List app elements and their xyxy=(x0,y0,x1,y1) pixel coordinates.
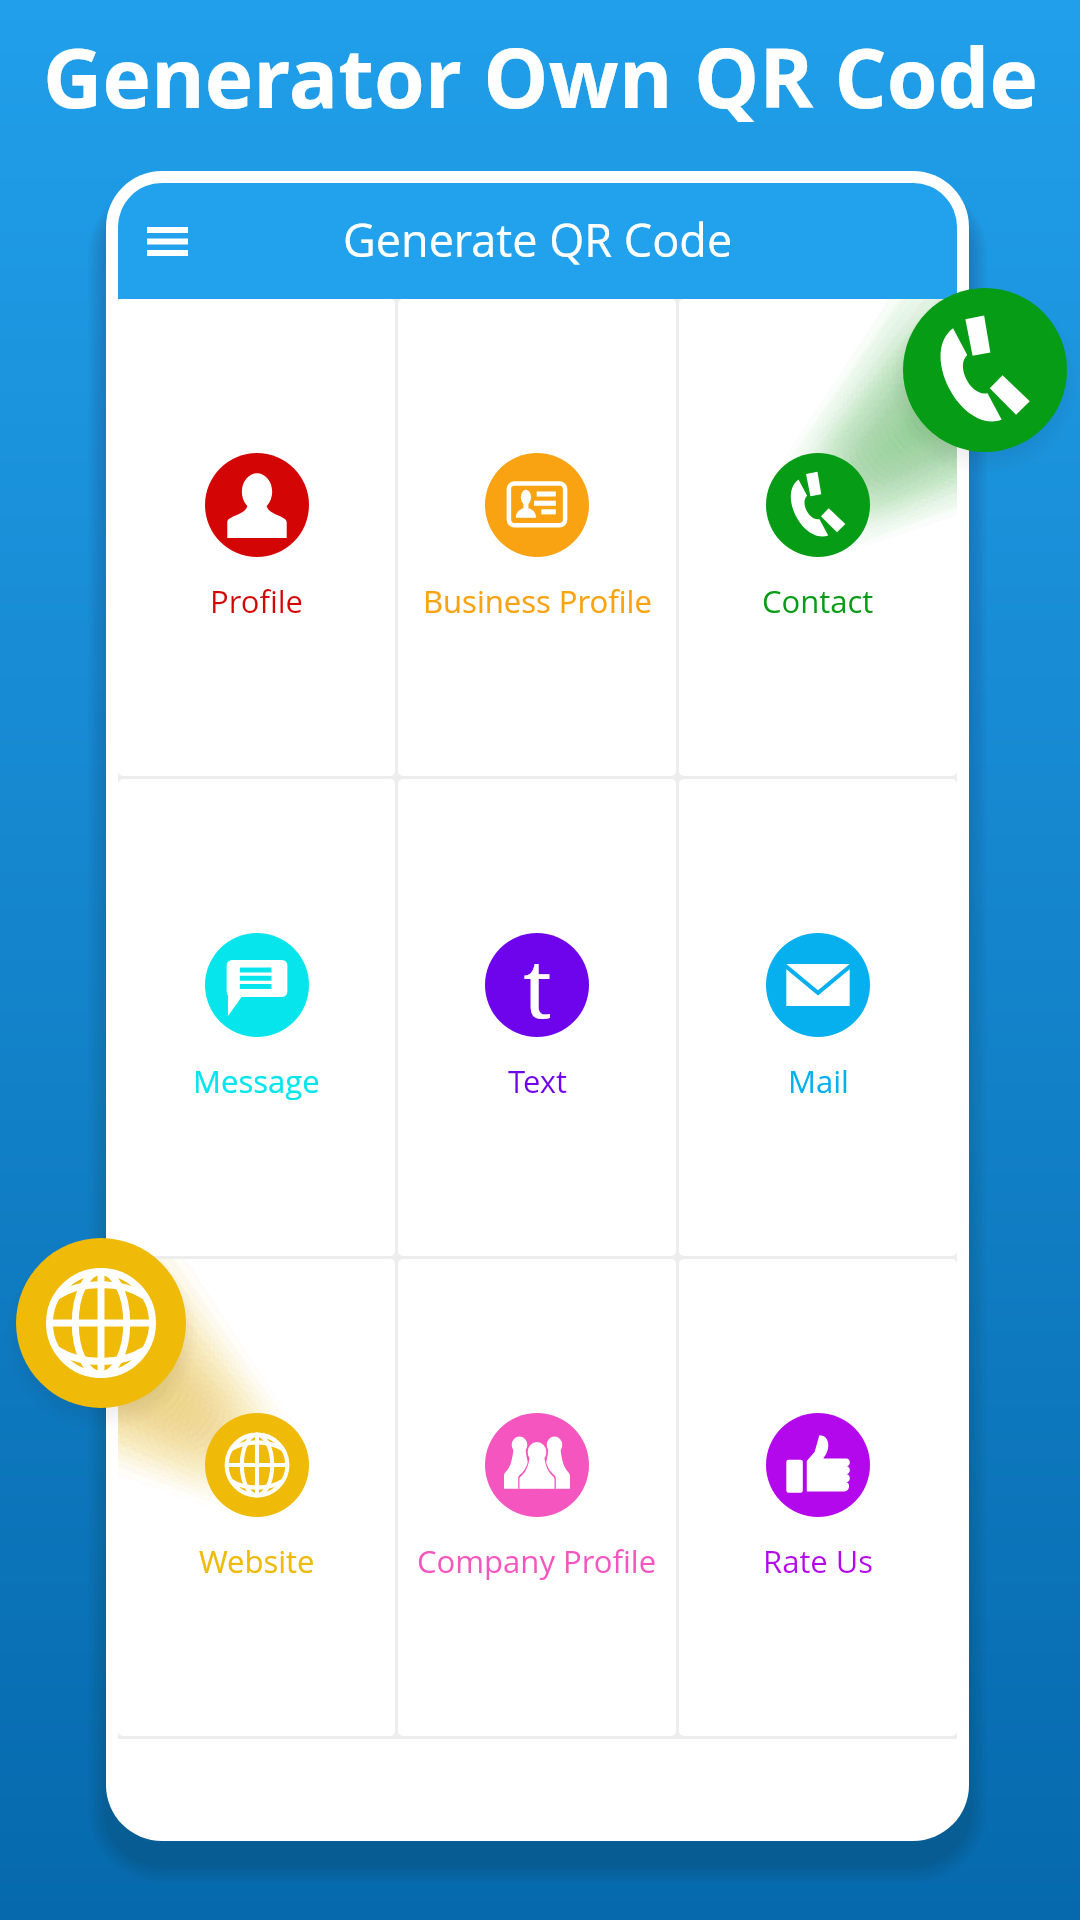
button[interactable]: Rate Us xyxy=(679,1259,957,1736)
staticText: Website xyxy=(199,1540,315,1582)
staticText: Message xyxy=(193,1060,320,1102)
button[interactable]: Call xyxy=(903,288,1067,452)
button[interactable]: Business Profile xyxy=(398,299,676,776)
staticText: Profile xyxy=(210,580,303,622)
staticText: Generate QR Code xyxy=(343,209,733,270)
button[interactable]: Mail xyxy=(679,779,957,1256)
staticText: Business Profile xyxy=(423,580,652,622)
staticText: Company Profile xyxy=(417,1540,657,1582)
button[interactable]: Company Profile xyxy=(398,1259,676,1736)
button[interactable]: Profile xyxy=(118,299,395,776)
button[interactable]: Menu xyxy=(118,183,216,299)
button[interactable]: t xyxy=(398,779,676,1256)
button[interactable]: Contact xyxy=(679,299,957,776)
staticText: Contact xyxy=(762,580,874,622)
staticText: t xyxy=(523,933,552,1034)
staticText: Generator Own QR Code xyxy=(43,20,1038,132)
staticText: Rate Us xyxy=(763,1540,874,1582)
staticText: Text xyxy=(508,1060,567,1102)
button[interactable]: Message xyxy=(118,779,395,1256)
button[interactable]: Website xyxy=(16,1238,186,1408)
staticText: Mail xyxy=(788,1060,849,1102)
button[interactable]: Website xyxy=(118,1259,395,1736)
